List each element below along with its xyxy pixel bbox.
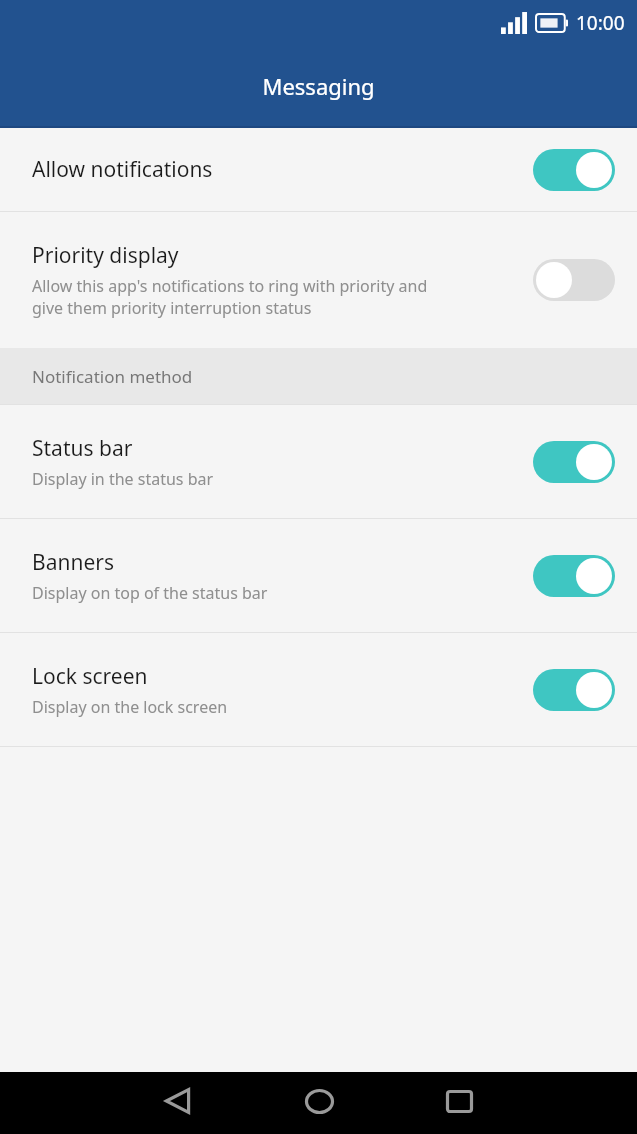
staticText: Lock screen [32,662,148,691]
button[interactable]: On [533,669,615,711]
button[interactable]: Status bar [0,405,637,518]
staticText: Priority display [32,241,179,270]
button[interactable]: Banners [0,519,637,632]
button[interactable]: Back [109,1072,249,1134]
button[interactable]: Home [249,1072,389,1134]
button[interactable]: On [533,149,615,191]
staticText: Messaging [262,71,375,101]
staticText: 10:00 [576,10,625,36]
staticText: Display on top of the status bar [32,582,268,604]
button[interactable]: Off [533,259,615,301]
staticText: Allow this app's notifications to ring w… [32,275,428,319]
button[interactable]: Allow notifications [0,128,637,211]
button[interactable]: Lock screen [0,633,637,746]
staticText: Display on the lock screen [32,696,228,718]
staticText: Status bar [32,434,133,463]
staticText: Allow notifications [32,155,213,184]
button[interactable]: Recent apps [389,1072,529,1134]
button[interactable]: On [533,555,615,597]
staticText: Notification method [32,365,193,388]
staticText: Banners [32,548,114,577]
staticText: Display in the status bar [32,468,214,490]
button[interactable]: Priority display [0,212,637,348]
button[interactable]: On [533,441,615,483]
